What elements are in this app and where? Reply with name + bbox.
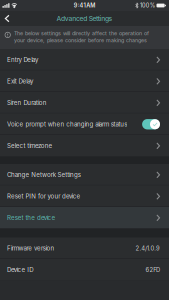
staticText: Voice prompt when changing alarm status [7,120,127,128]
button[interactable] [142,119,160,129]
staticText: Reset the device [7,214,55,221]
staticText: The below settings will directly affect … [14,30,149,37]
button[interactable]: Reset PIN for your device [0,185,169,207]
button[interactable]: Firmware version [0,237,169,259]
staticText: Select timezone [7,142,53,149]
staticText: Entry Delay [7,56,38,63]
staticText: Firmware version [7,244,54,252]
staticText: Advanced Settings [56,14,113,23]
staticText: Exit Delay [7,77,33,85]
staticText: 100% [140,2,155,9]
staticText: Device ID [7,266,33,273]
button[interactable] [0,15,16,22]
staticText: 62FD [146,266,160,273]
button[interactable]: Device ID [0,259,169,280]
button[interactable]: Siren Duration [0,92,169,113]
button[interactable]: Exit Delay [0,70,169,92]
staticText: 9:41 AM [74,2,95,9]
button[interactable]: Voice prompt when changing alarm status [0,113,169,135]
staticText: Change Network Settings [7,171,81,178]
staticText: your device, please consider before maki… [14,37,147,44]
staticText: 2.4/1.0.9 [136,245,160,252]
staticText: Reset PIN for your device [7,192,81,200]
staticText: Siren Duration [7,99,47,106]
button[interactable]: Change Network Settings [0,164,169,185]
button[interactable]: Reset the device [0,207,169,228]
button[interactable]: Entry Delay [0,49,169,70]
button[interactable]: Select timezone [0,135,169,156]
